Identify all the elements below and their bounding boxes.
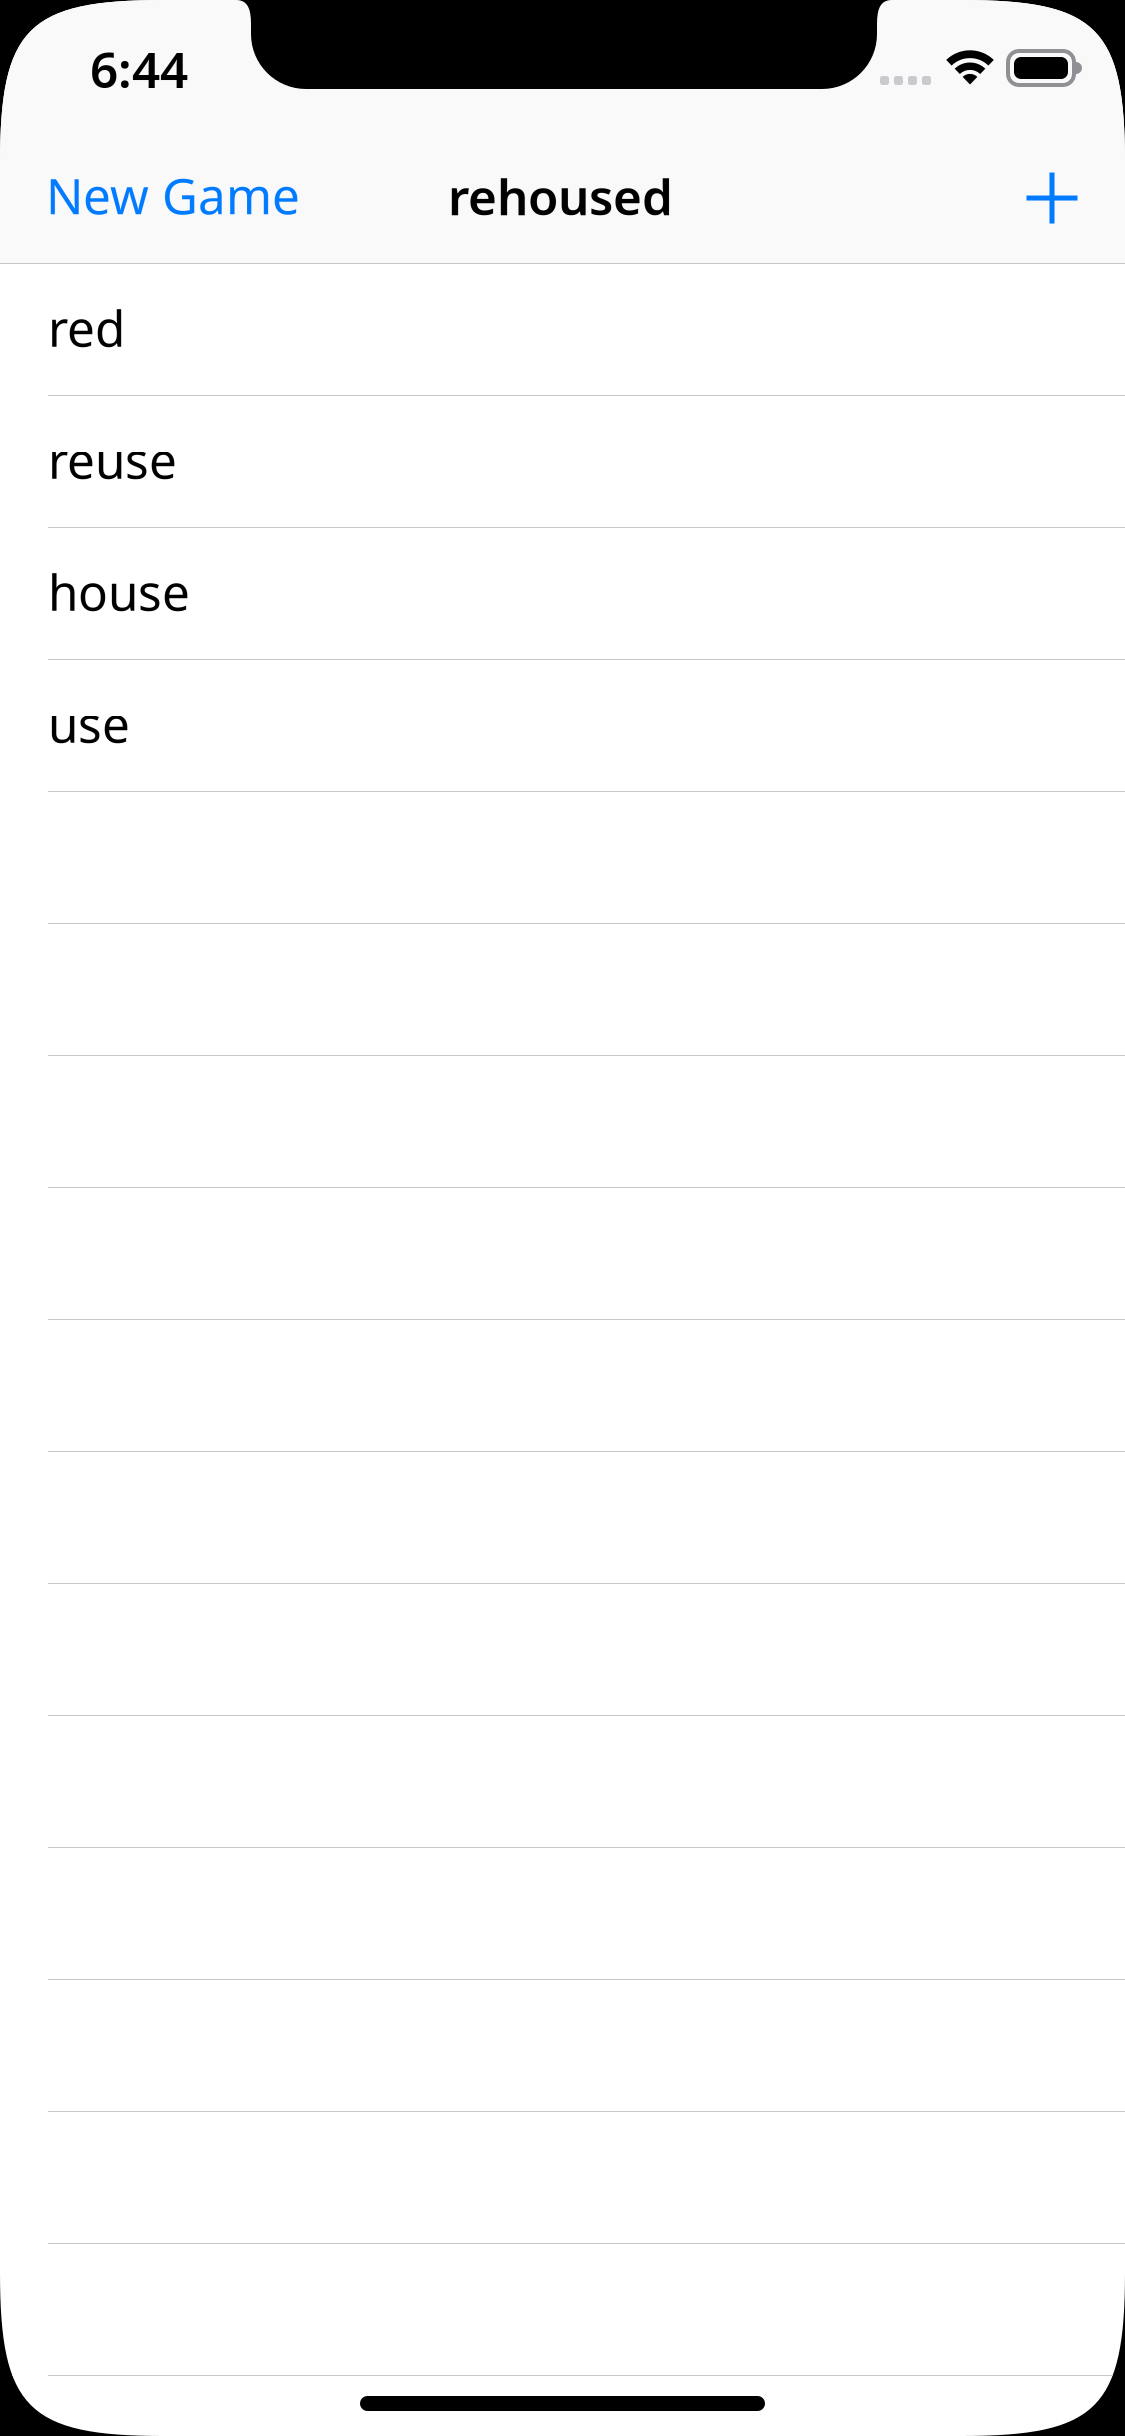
button[interactable]: house — [0, 528, 1125, 660]
button[interactable] — [0, 2244, 1125, 2376]
button[interactable] — [0, 924, 1125, 1056]
button[interactable] — [0, 1056, 1125, 1188]
button[interactable] — [0, 1716, 1125, 1848]
button[interactable] — [0, 1848, 1125, 1980]
button[interactable] — [0, 1320, 1125, 1452]
button[interactable] — [0, 1980, 1125, 2112]
staticText: house — [48, 559, 190, 624]
staticText: red — [48, 295, 125, 360]
staticText: New Game — [46, 162, 300, 228]
button[interactable] — [0, 2112, 1125, 2244]
staticText: reuse — [48, 427, 177, 492]
staticText: use — [48, 691, 130, 756]
button[interactable]: red — [0, 264, 1125, 396]
button[interactable]: New Game — [0, 132, 324, 264]
button[interactable] — [0, 1188, 1125, 1320]
button[interactable] — [0, 1452, 1125, 1584]
button[interactable]: use — [0, 660, 1125, 792]
staticText: 6:44 — [90, 36, 188, 101]
button[interactable]: Add — [1013, 132, 1125, 264]
button[interactable] — [0, 1584, 1125, 1716]
button[interactable] — [0, 792, 1125, 924]
staticText: rehoused — [448, 163, 673, 229]
button[interactable]: reuse — [0, 396, 1125, 528]
